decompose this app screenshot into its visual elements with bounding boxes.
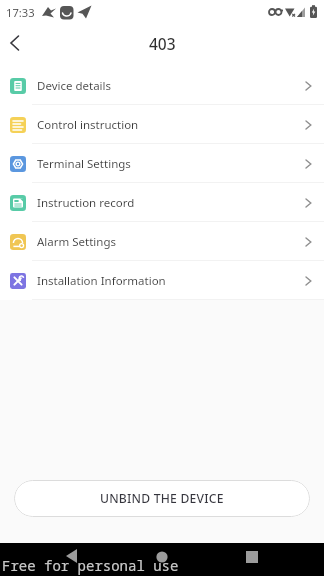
button[interactable]: Instruction record	[0, 183, 324, 222]
staticText: 403	[149, 33, 176, 54]
staticText: Installation Information	[37, 273, 166, 289]
staticText: Device details	[37, 78, 112, 94]
staticText: Alarm Settings	[37, 234, 117, 250]
staticText: UNBIND THE DEVICE	[100, 490, 224, 507]
staticText: 17:33	[6, 5, 35, 20]
button[interactable]	[0, 24, 40, 66]
button[interactable]: UNBIND THE DEVICE	[14, 480, 310, 517]
button[interactable]: Installation Information	[0, 261, 324, 300]
button[interactable]: Alarm Settings	[0, 222, 324, 261]
button[interactable]: Terminal Settings	[0, 144, 324, 183]
staticText: Instruction record	[37, 195, 135, 211]
staticText: Free for personal use	[2, 556, 179, 575]
staticText: Terminal Settings	[37, 156, 131, 172]
button[interactable]: Control instruction	[0, 105, 324, 144]
button[interactable]: Device details	[0, 66, 324, 105]
staticText: Control instruction	[37, 117, 139, 133]
